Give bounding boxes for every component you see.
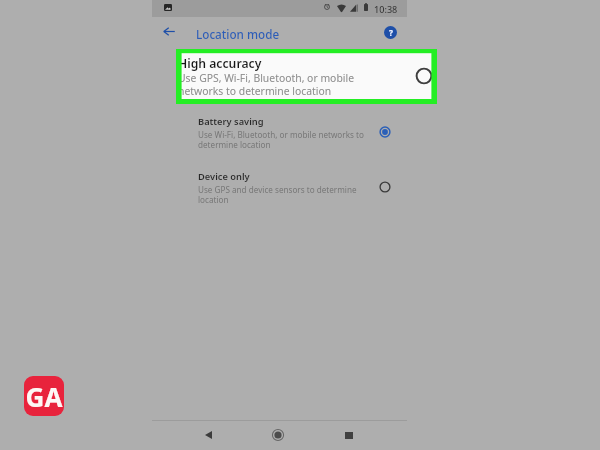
staticText: High accuracy <box>178 55 262 72</box>
staticText: Use GPS and device sensors to determine … <box>198 184 357 205</box>
staticText: Use GPS, Wi-Fi, Bluetooth, or mobile net… <box>178 71 355 98</box>
staticText: 10:38 <box>374 3 398 15</box>
button[interactable]: Help <box>381 23 400 42</box>
button[interactable]: High accuracy <box>176 49 437 104</box>
staticText: Device only <box>198 170 250 183</box>
button[interactable]: Back <box>196 423 220 447</box>
staticText: Use Wi-Fi, Bluetooth, or mobile networks… <box>198 129 364 150</box>
staticText: Location mode <box>196 26 280 42</box>
staticText: Battery saving <box>198 115 264 128</box>
staticText: GA <box>24 379 64 414</box>
button[interactable]: Home <box>266 423 290 447</box>
button[interactable]: Battery saving <box>152 110 407 160</box>
button[interactable]: Back <box>157 20 180 43</box>
staticText: ? <box>389 27 393 38</box>
button[interactable]: Device only <box>152 165 407 215</box>
button[interactable]: Recents <box>337 423 361 447</box>
